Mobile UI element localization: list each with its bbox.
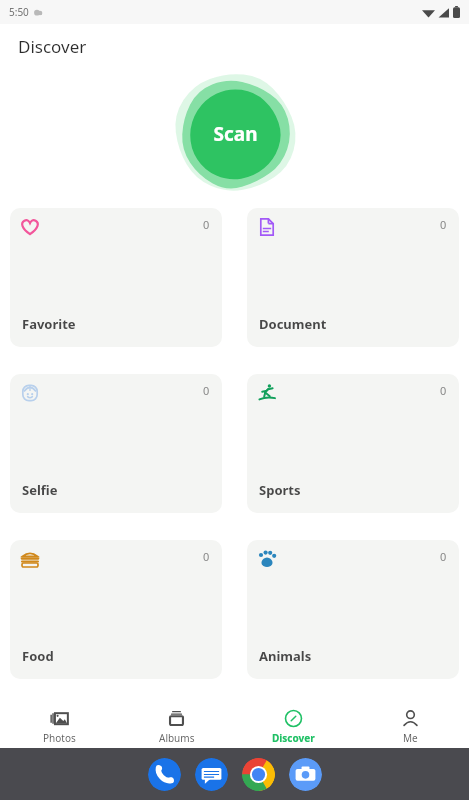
staticText: Albums (159, 731, 195, 745)
button[interactable]: 0 (247, 540, 459, 679)
button[interactable]: 0 (247, 706, 459, 800)
button[interactable]: 0 (10, 706, 222, 800)
button[interactable]: 0 (247, 374, 459, 513)
staticText: Discover (272, 731, 315, 745)
button[interactable]: Chrome (242, 758, 275, 791)
staticText: 0 (440, 549, 447, 564)
button[interactable]: 0 (10, 374, 222, 513)
staticText: Animals (259, 647, 312, 665)
staticText: Discover (18, 35, 87, 58)
staticText: Screenshot (259, 768, 332, 786)
button[interactable]: Scan (171, 70, 299, 198)
button[interactable]: 0 (10, 540, 222, 679)
button[interactable]: Discover (235, 705, 352, 748)
staticText: Sports (259, 481, 301, 499)
staticText: 0 (203, 549, 210, 564)
staticText: Food (22, 647, 54, 665)
staticText: 0 (203, 383, 210, 398)
button[interactable]: Messages (195, 758, 228, 791)
staticText: 0 (440, 217, 447, 232)
button[interactable]: Phone (148, 758, 181, 791)
staticText: 5:50 (9, 5, 29, 19)
staticText: 0 (203, 217, 210, 232)
staticText: 0 (440, 383, 447, 398)
button[interactable]: 0 (10, 208, 222, 347)
staticText: Photos (43, 731, 76, 745)
staticText: Selfie (22, 481, 58, 499)
staticText: Scan (213, 121, 258, 147)
button[interactable]: Me (352, 705, 469, 748)
staticText: Favorite (22, 315, 76, 333)
button[interactable]: Photos (0, 705, 118, 748)
button[interactable]: 0 (247, 208, 459, 347)
button[interactable]: Albums (118, 705, 235, 748)
button[interactable]: Camera (289, 758, 322, 791)
staticText: Me (403, 731, 418, 745)
staticText: Document (259, 315, 327, 333)
